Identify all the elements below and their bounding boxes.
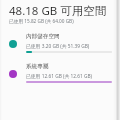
button[interactable]: 內部儲存空間: [0, 33, 120, 60]
button[interactable]: 系統專屬: [0, 63, 120, 90]
staticText: 內部儲存空間: [26, 33, 60, 40]
staticText: 系統專屬: [26, 63, 49, 70]
staticText: 已使用 3.20 GB (共 51.39 GB): [26, 43, 90, 50]
staticText: 已使用 12.61 GB (共 12.61 GB): [26, 73, 93, 80]
staticText: 48.18 GB 可用空間: [9, 3, 107, 19]
staticText: 已使用 15.82 GB (共 64.00 GB): [9, 18, 74, 24]
